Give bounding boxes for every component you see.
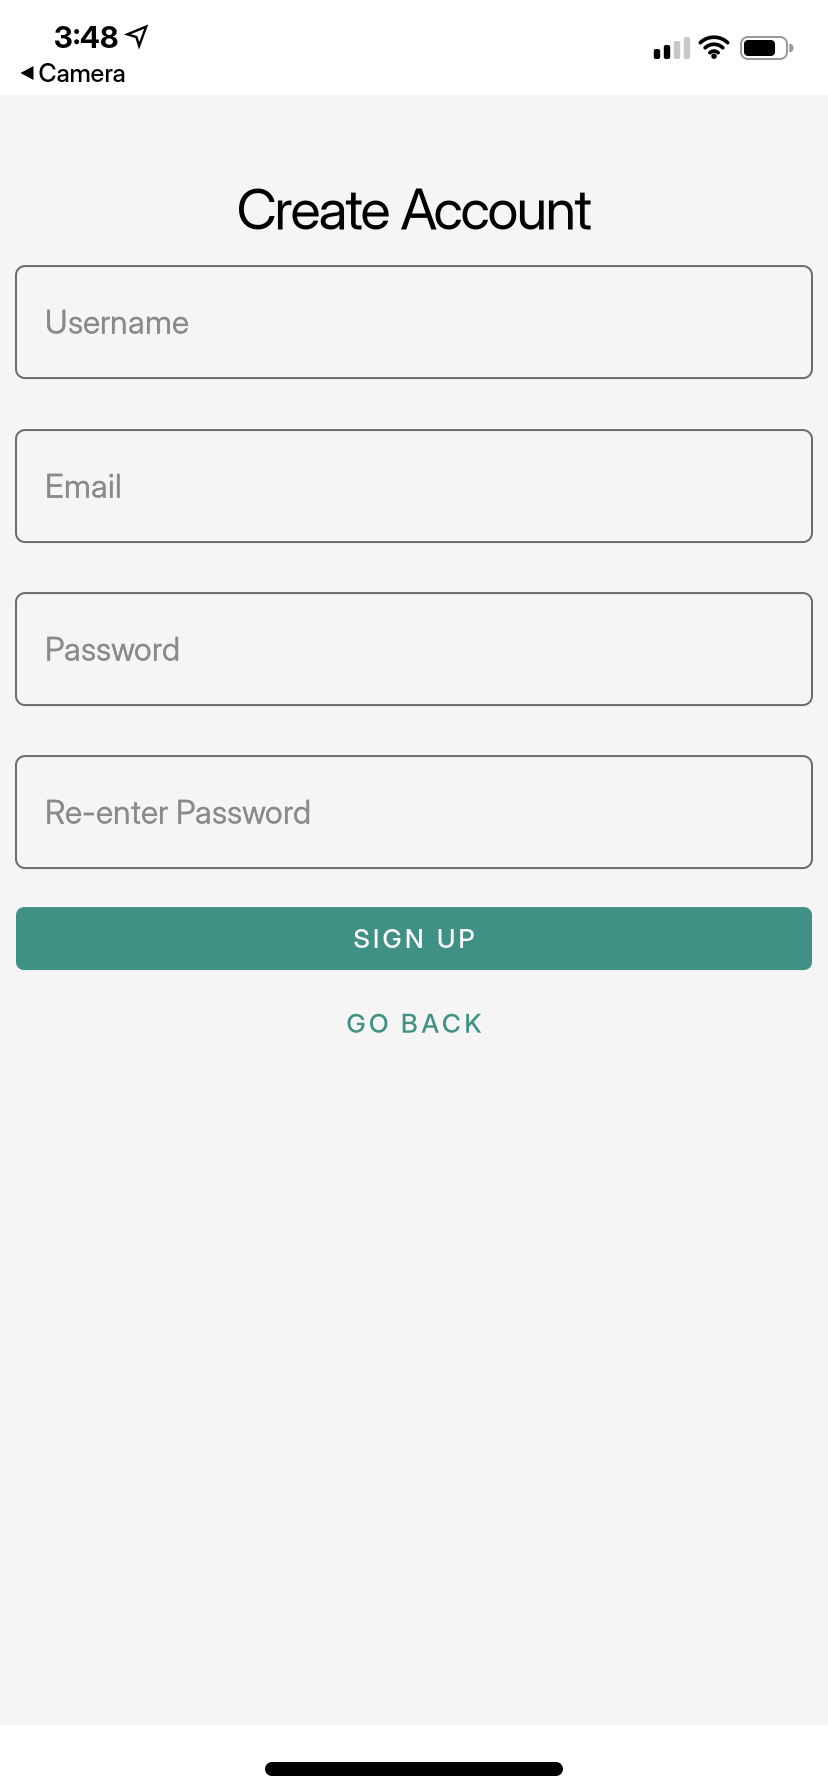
textField[interactable]: Password <box>45 630 812 668</box>
staticText: Email <box>45 467 122 505</box>
staticText: 3:48 <box>54 19 118 55</box>
staticText: Username <box>45 303 189 341</box>
textField[interactable]: Username <box>45 303 812 341</box>
staticText: Password <box>45 630 180 668</box>
staticText: Create Account <box>236 176 591 242</box>
button[interactable]: GO BACK <box>346 1008 481 1039</box>
staticText: Re-enter Password <box>45 793 311 831</box>
button[interactable]: SIGN UP <box>16 907 812 970</box>
staticText: Password <box>45 630 180 668</box>
staticText: Re-enter Password <box>45 793 311 831</box>
textField[interactable]: Re-enter Password <box>45 793 812 831</box>
staticText: GO BACK <box>346 1008 481 1039</box>
staticText: Email <box>45 467 122 505</box>
staticText: Username <box>45 303 189 341</box>
button[interactable]: Camera <box>20 58 125 88</box>
staticText: SIGN UP <box>353 923 474 954</box>
staticText: Camera <box>38 58 125 88</box>
textField[interactable]: Email <box>45 467 812 505</box>
